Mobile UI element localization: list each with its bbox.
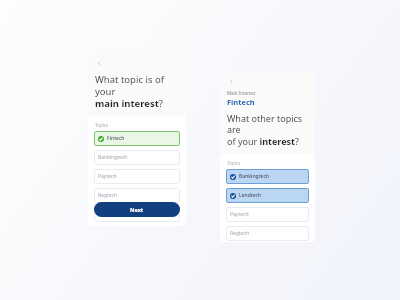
button[interactable]: Back: [95, 59, 103, 67]
staticText: Regtech: [98, 192, 118, 199]
staticText: Fintech: [227, 97, 255, 107]
staticText: Paytech: [98, 173, 117, 180]
button[interactable]: Back: [227, 77, 235, 85]
button[interactable]: Lendtech: [226, 188, 309, 203]
staticText: Topics: [227, 160, 241, 166]
button[interactable]: Paytech: [94, 169, 180, 184]
staticText: What other topics are of your interest?: [227, 112, 308, 148]
staticText: Bankingtech: [98, 154, 128, 161]
staticText: Bankingtech: [239, 173, 270, 180]
button[interactable]: Next: [94, 202, 180, 217]
button[interactable]: Regtech: [94, 188, 180, 203]
button[interactable]: Fintech: [94, 131, 180, 146]
staticText: Topics: [95, 122, 109, 128]
staticText: Wealthtech: [98, 211, 125, 218]
button[interactable]: Paytech: [226, 207, 309, 222]
staticText: Lendtech: [239, 192, 262, 199]
button[interactable]: Bankingtech: [226, 169, 309, 184]
staticText: Next: [130, 206, 144, 213]
staticText: Fintech: [107, 135, 125, 142]
staticText: What topic is of your main interest?: [95, 73, 179, 110]
button[interactable]: Wealthtech: [94, 207, 180, 222]
button[interactable]: Bankingtech: [94, 150, 180, 165]
staticText: Main Interest: [227, 90, 256, 96]
staticText: Paytech: [230, 211, 249, 218]
staticText: Regtech: [230, 230, 250, 237]
button[interactable]: Regtech: [226, 226, 309, 241]
